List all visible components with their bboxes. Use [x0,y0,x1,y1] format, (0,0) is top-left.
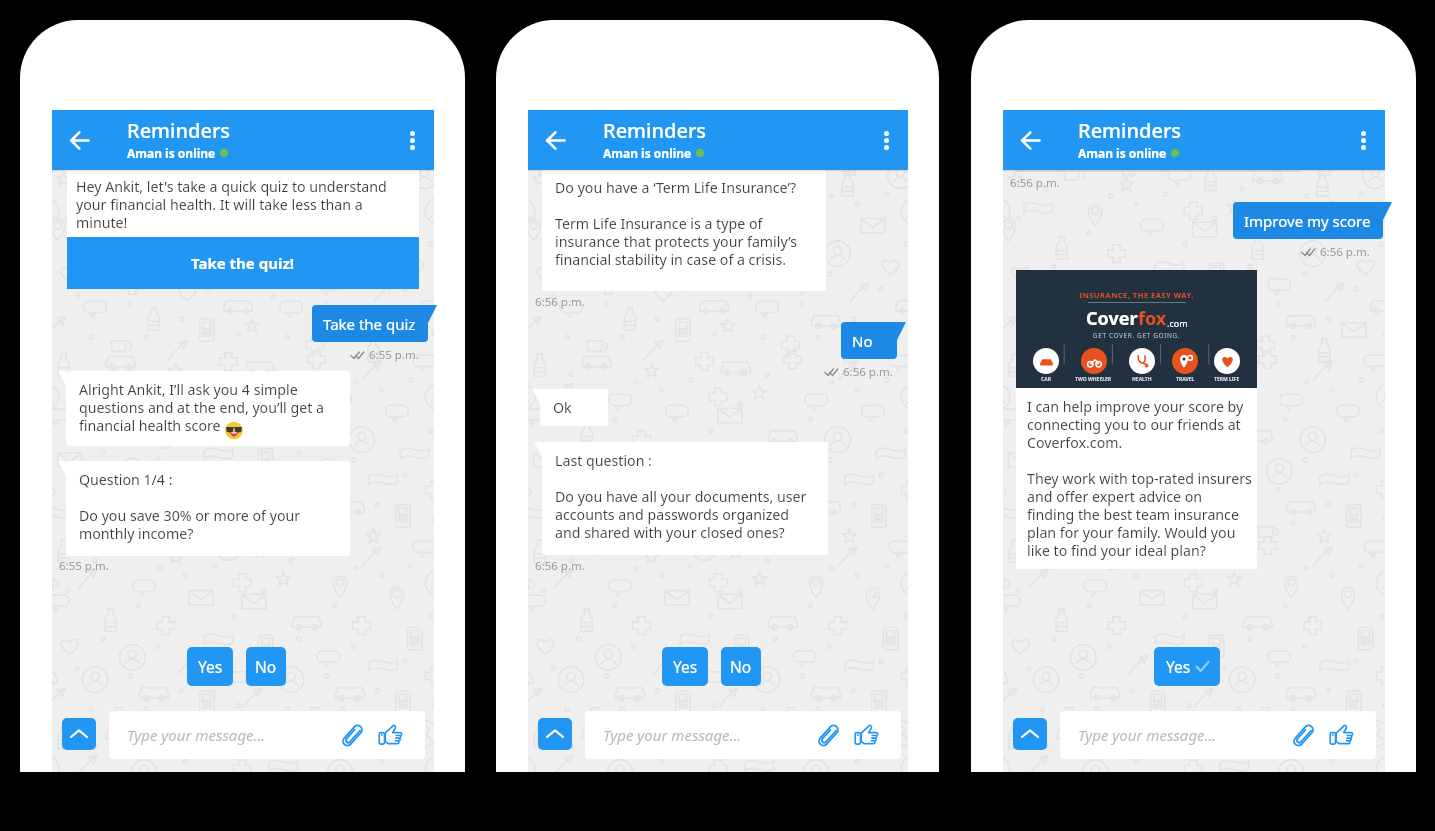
button[interactable]: Attach [339,722,365,748]
button[interactable]: No [721,647,761,686]
button[interactable]: Do you have a ‘Term Life Insurance’? ⁣Te… [542,170,826,291]
staticText: 6:56 p.m. [843,364,893,380]
button[interactable]: Type your message... [585,711,901,759]
staticText: Question 1/4 : Do you save 30% or more o… [79,470,301,543]
button[interactable]: Last question : Do you have all your doc… [542,442,828,555]
staticText: .com [1167,317,1188,329]
staticText: Type your message... [603,725,742,745]
button[interactable]: Yes [1154,647,1220,686]
staticText: INSURANCE, THE EASY WAY. [1016,290,1257,300]
staticText: I can help improve your score by connect… [1027,397,1252,560]
button[interactable]: Expand [1013,718,1047,750]
staticText: Ok [553,398,572,417]
button[interactable]: Like [1328,722,1354,748]
staticText: Aman is online [127,145,216,161]
staticText: No [852,331,873,351]
staticText: Reminders [127,117,231,144]
staticText: 6:56 p.m. [535,558,585,574]
button[interactable]: Type your message... [109,711,425,759]
button[interactable]: Type your message... [1060,711,1376,759]
button[interactable]: Yes [187,647,233,686]
button[interactable]: I can help improve your score by connect… [1016,388,1257,569]
staticText: 6:56 p.m. [1320,244,1370,260]
staticText: Reminders [1078,117,1182,144]
staticText: Reminders [603,117,707,144]
button[interactable]: Expand [538,718,572,750]
button[interactable]: Hey Ankit, let's take a quick quiz to un… [67,170,419,237]
button[interactable]: Yes [662,647,708,686]
staticText: HEALTH [1132,376,1152,383]
button[interactable]: Ok [540,389,608,426]
staticText: Type your message... [127,725,266,745]
staticText: CAR [1041,376,1051,383]
staticText: Yes [673,656,698,677]
staticText: Improve my score [1244,211,1371,231]
staticText: Cover [1086,306,1138,331]
button[interactable]: Like [377,722,403,748]
staticText: Last question : Do you have all your doc… [555,451,807,542]
staticText: No [255,656,277,677]
button[interactable]: Like [853,722,879,748]
button[interactable]: Attach [1290,722,1316,748]
staticText: Aman is online [603,145,692,161]
button[interactable]: More options [866,120,906,160]
staticText: Aman is online [1078,145,1167,161]
staticText: Yes [198,656,223,677]
staticText: fox [1138,306,1167,331]
staticText: Hey Ankit, let's take a quick quiz to un… [76,177,387,232]
staticText: Take the quiz [323,314,416,334]
staticText: GET COVER. GET GOING. [1016,331,1257,340]
button[interactable]: Question 1/4 : Do you save 30% or more o… [66,461,350,556]
button[interactable]: No [246,647,286,686]
staticText: Take the quiz! [191,253,295,273]
button[interactable]: More options [392,120,432,160]
button[interactable]: Attach [815,722,841,748]
staticText: Type your message... [1078,725,1217,745]
staticText: TERM LIFE [1214,376,1240,383]
button[interactable]: More options [1343,120,1383,160]
staticText: 6:55 p.m. [59,558,109,574]
staticText: No [730,656,752,677]
staticText: Do you have a ‘Term Life Insurance’? ⁣Te… [555,178,798,269]
button[interactable]: Back [533,118,577,162]
button[interactable]: Expand [62,718,96,750]
staticText: Yes [1166,656,1191,677]
staticText: TRAVEL [1176,376,1195,383]
button[interactable]: Back [57,118,101,162]
staticText: 6:55 p.m. [369,347,419,363]
staticText: TWO WHEELER [1075,376,1112,383]
button[interactable]: Improve my score [1233,202,1392,239]
staticText: 6:56 p.m. [1010,175,1060,191]
button[interactable]: Alright Ankit, I’ll ask you 4 simple que… [66,371,350,446]
staticText: Alright Ankit, I’ll ask you 4 simple que… [79,380,324,435]
button[interactable]: Take the quiz [312,305,437,342]
staticText: 6:56 p.m. [535,294,585,310]
button[interactable]: Take the quiz! [67,237,419,289]
button[interactable]: Back [1008,118,1052,162]
button[interactable]: No [841,322,906,359]
